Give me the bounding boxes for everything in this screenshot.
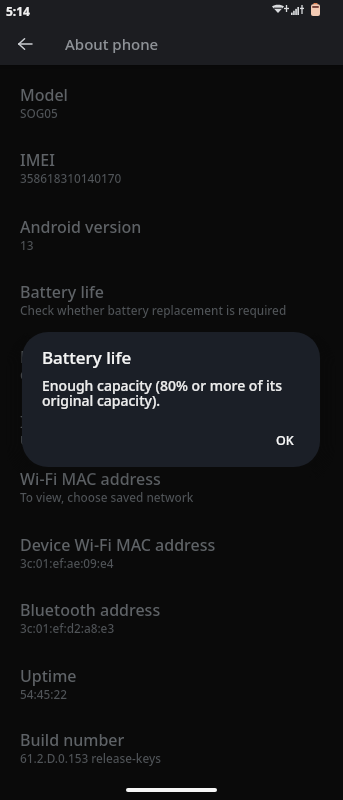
staticText: Build number — [20, 729, 125, 751]
button[interactable]: Model — [0, 84, 343, 136]
staticText: To view, choose saved network — [20, 489, 194, 505]
button[interactable]: Android version — [0, 216, 343, 268]
staticText: 61.2.D.0.153 release-keys — [20, 750, 161, 766]
staticText: Model — [20, 84, 68, 106]
button[interactable]: Bluetooth address — [0, 599, 343, 651]
staticText: Battery life — [42, 346, 132, 369]
staticText: Unavailable — [20, 432, 87, 448]
staticText: Enough capacity (80% or more of its orig… — [42, 376, 294, 411]
staticText: 3c:01:ef:d2:a8:e3 — [20, 620, 115, 636]
staticText: Android version — [20, 216, 142, 238]
staticText: Check whether battery replacement is req… — [20, 302, 287, 318]
staticText: 54:45:22 — [20, 686, 67, 702]
staticText: Device Wi-Fi MAC address — [20, 534, 216, 556]
button[interactable]: Back — [11, 30, 39, 58]
staticText: Battery information — [20, 346, 172, 368]
staticText: Battery life — [20, 281, 104, 303]
staticText: Check battery information — [20, 367, 169, 383]
button[interactable]: OK — [263, 426, 307, 455]
staticText: 5:14 — [6, 3, 30, 19]
button[interactable]: IP address — [0, 411, 343, 463]
staticText: 3c:01:ef:ae:09:e4 — [20, 555, 114, 571]
staticText: 358618310140170 — [20, 170, 122, 186]
staticText: IP address — [20, 411, 100, 433]
staticText: SOG05 — [20, 105, 58, 121]
button[interactable]: Device Wi-Fi MAC address — [0, 534, 343, 586]
staticText: Uptime — [20, 665, 77, 687]
button[interactable]: IMEI — [0, 149, 343, 201]
staticText: Bluetooth address — [20, 599, 161, 621]
staticText: OK — [276, 432, 294, 449]
staticText: Wi-Fi MAC address — [20, 468, 161, 490]
staticText: About phone — [65, 34, 159, 54]
button[interactable]: Uptime — [0, 665, 343, 717]
staticText: IMEI — [20, 149, 55, 171]
button[interactable]: Battery information — [0, 346, 343, 398]
button[interactable]: Build number — [0, 729, 343, 781]
button[interactable]: Wi-Fi MAC address — [0, 468, 343, 520]
button[interactable]: Battery life — [0, 281, 343, 333]
staticText: 13 — [20, 237, 34, 253]
